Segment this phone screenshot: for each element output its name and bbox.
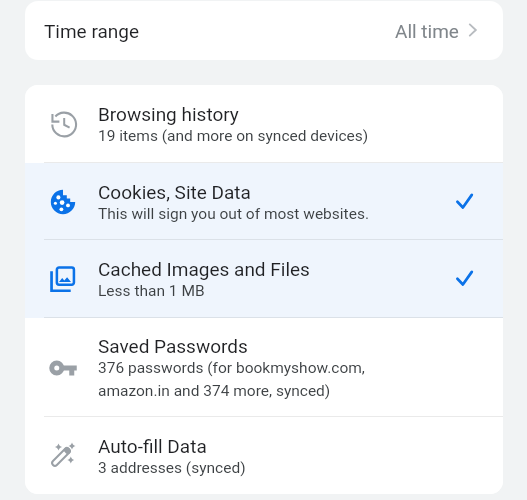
other: Selected <box>459 190 483 214</box>
staticText: Saved Passwords <box>98 335 248 357</box>
staticText: Time range <box>44 20 140 42</box>
button[interactable]: Auto-fill Data <box>25 417 503 494</box>
staticText: All time <box>395 20 459 42</box>
staticText: 3 addresses (synced) <box>98 459 246 477</box>
staticText: 376 passwords (for bookmyshow.com, amazo… <box>98 359 365 400</box>
staticText: Browsing history <box>98 103 239 125</box>
staticText: This will sign you out of most websites. <box>98 205 369 223</box>
button[interactable]: Browsing history <box>25 85 503 163</box>
staticText: Less than 1 MB <box>98 282 205 300</box>
other: Selected <box>459 267 483 291</box>
staticText: Cookies, Site Data <box>98 181 251 203</box>
button[interactable]: Cached Images and Files <box>25 240 503 318</box>
staticText: Auto-fill Data <box>98 435 207 457</box>
button[interactable]: Time range <box>25 1 503 60</box>
button[interactable]: Saved Passwords <box>25 318 503 417</box>
button[interactable]: Cookies, Site Data <box>25 163 503 240</box>
other: Change time range <box>465 24 479 38</box>
staticText: Cached Images and Files <box>98 258 310 280</box>
staticText: 19 items (and more on synced devices) <box>98 127 369 145</box>
